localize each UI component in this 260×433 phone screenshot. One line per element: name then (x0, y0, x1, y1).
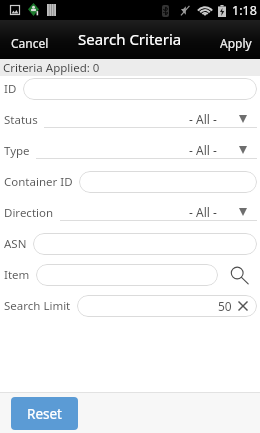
staticText: Cancel (11, 35, 49, 51)
staticText: - All - (189, 142, 217, 157)
button[interactable]: Apply (212, 20, 260, 59)
staticText: - All - (189, 204, 217, 219)
staticText: 1:18 (232, 2, 257, 19)
staticText: Direction (4, 205, 54, 221)
button[interactable]: Search item (218, 264, 260, 286)
button[interactable] (23, 78, 257, 100)
staticText: ID (4, 81, 17, 97)
staticText: Item (4, 267, 30, 283)
button[interactable]: - All - (60, 204, 257, 221)
staticText: ASN (4, 236, 27, 252)
button[interactable]: Reset (11, 397, 78, 430)
staticText: Search Criteria (78, 29, 182, 49)
staticText: Apply (220, 35, 252, 51)
button[interactable]: - All - (36, 142, 257, 159)
staticText: 50 (218, 298, 232, 314)
staticText: Search Limit (4, 298, 71, 314)
staticText: Status (4, 112, 38, 128)
staticText: Criteria Applied: 0 (3, 60, 100, 76)
button[interactable]: Cancel (0, 20, 60, 59)
button[interactable] (33, 233, 257, 255)
staticText: Container ID (4, 174, 73, 190)
button[interactable] (36, 264, 218, 286)
staticText: Reset (27, 405, 62, 423)
staticText: - All - (189, 111, 217, 126)
button[interactable]: 50 (77, 295, 257, 317)
button[interactable]: - All - (44, 111, 257, 128)
staticText: Type (4, 143, 30, 159)
button[interactable] (79, 171, 257, 193)
